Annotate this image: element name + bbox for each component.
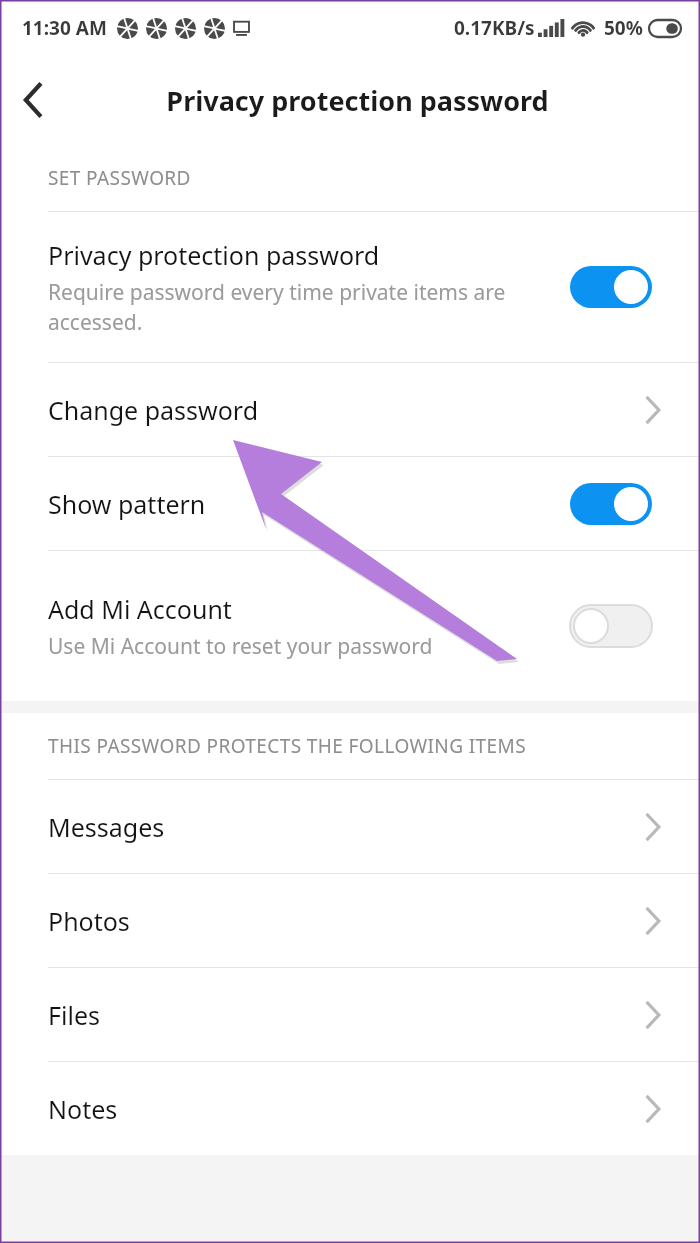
staticText: Show pattern [48, 487, 570, 521]
staticText: Require password every time private item… [48, 278, 506, 336]
staticText: SET PASSWORD [48, 165, 191, 191]
button[interactable]: Add Mi Account [0, 551, 700, 701]
staticText: Use Mi Account to reset your password [48, 632, 433, 661]
staticText: Privacy protection password [48, 238, 380, 272]
staticText: 11:30 AM [22, 15, 107, 41]
staticText: THIS PASSWORD PROTECTS THE FOLLOWING ITE… [48, 733, 526, 759]
staticText: Files [48, 998, 646, 1032]
button[interactable]: On [570, 266, 652, 308]
button[interactable]: Change password [0, 363, 700, 456]
button[interactable]: Back [0, 67, 66, 133]
staticText: Notes [48, 1092, 646, 1126]
button[interactable]: On [570, 483, 652, 525]
button[interactable]: Show pattern [0, 457, 700, 550]
button[interactable]: Notes [0, 1062, 700, 1155]
staticText: 50% [604, 15, 643, 41]
button[interactable]: Privacy protection password [0, 212, 700, 362]
button[interactable]: Off [570, 605, 652, 647]
staticText: Privacy protection password [166, 82, 549, 119]
button[interactable]: Photos [0, 874, 700, 967]
staticText: Add Mi Account [48, 592, 232, 626]
staticText: Messages [48, 810, 646, 844]
staticText: 0.17KB/s [454, 15, 535, 41]
button[interactable]: Messages [0, 780, 700, 873]
button[interactable]: Files [0, 968, 700, 1061]
staticText: Photos [48, 904, 646, 938]
staticText: Change password [48, 393, 646, 427]
